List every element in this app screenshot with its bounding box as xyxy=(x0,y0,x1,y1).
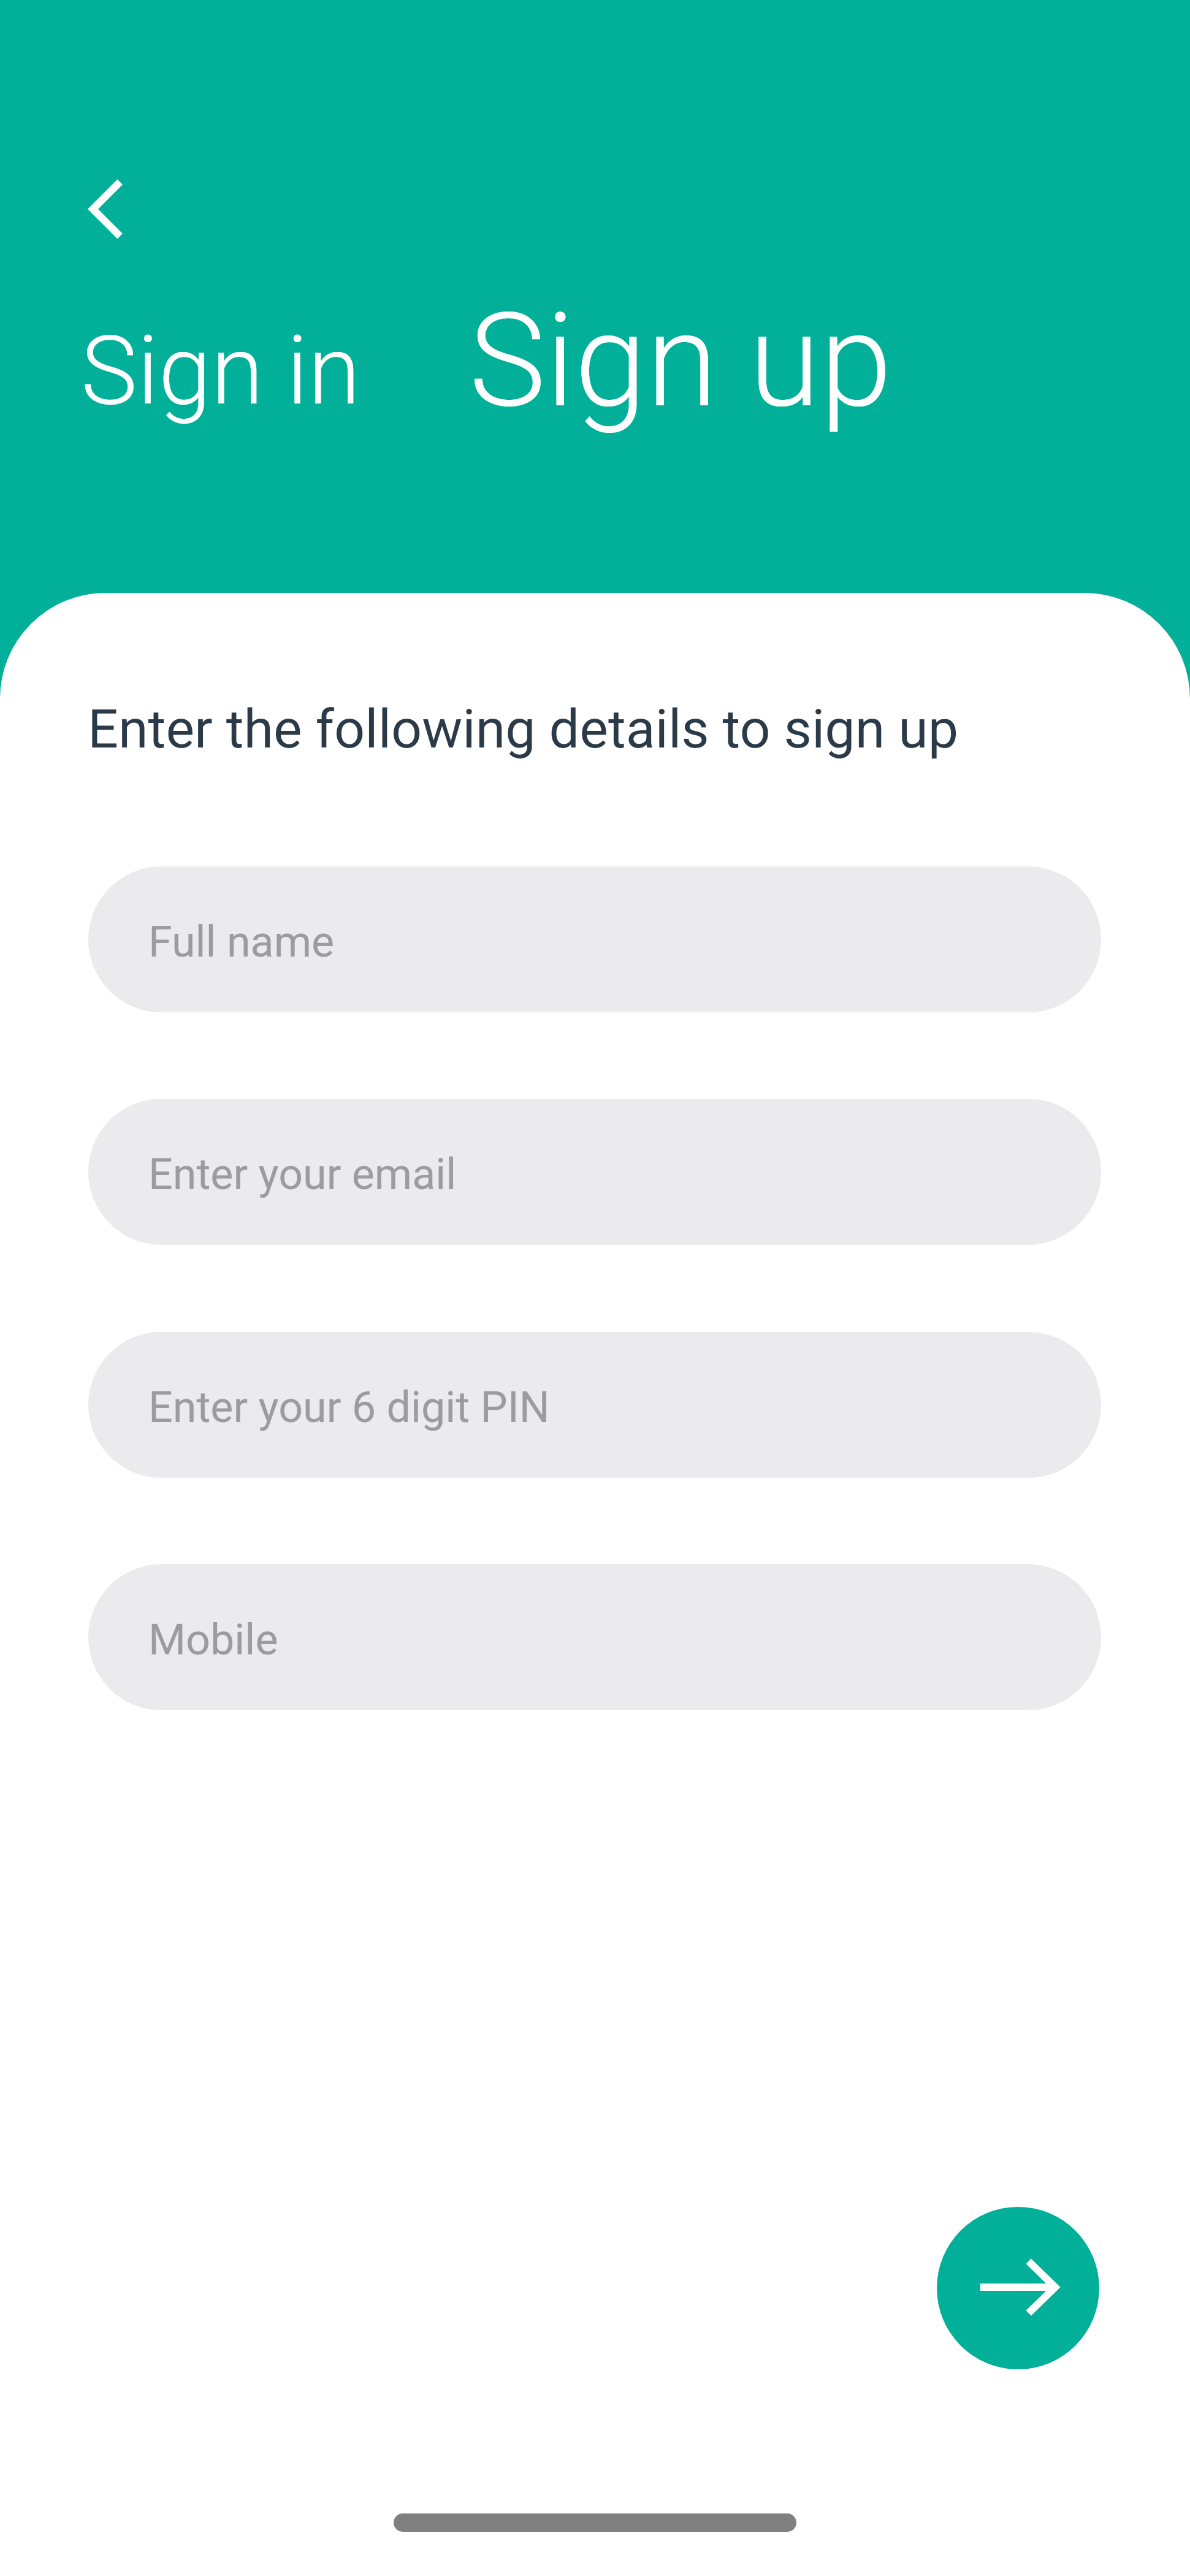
staticText: Mobile xyxy=(148,1615,278,1665)
button[interactable]: Sign in xyxy=(69,303,365,429)
staticText: Sign up xyxy=(469,285,892,437)
button[interactable]: Sign up xyxy=(457,273,907,440)
staticText: Sign in xyxy=(81,315,360,427)
button[interactable]: Continue xyxy=(937,2207,1099,2369)
button[interactable]: Enter your email xyxy=(88,1099,1101,1245)
staticText: Enter the following details to sign up xyxy=(88,697,959,760)
button[interactable]: Mobile xyxy=(88,1564,1101,1710)
staticText: Enter your email xyxy=(148,1149,457,1199)
staticText: Full name xyxy=(148,917,335,967)
button[interactable]: Full name xyxy=(88,866,1101,1012)
staticText: Enter your 6 digit PIN xyxy=(148,1382,550,1432)
button[interactable]: Back xyxy=(37,153,153,270)
button[interactable]: Enter your 6 digit PIN xyxy=(88,1332,1101,1478)
